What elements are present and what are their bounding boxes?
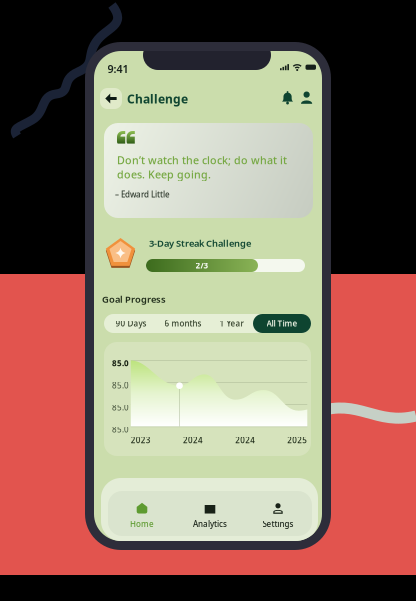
staticText: 85.0 [112,358,129,368]
staticText: 85.0 [112,402,129,413]
staticText: Home [130,518,154,529]
staticText: 2023 [131,435,151,445]
staticText: Settings [262,518,293,529]
button[interactable]: Profile [301,91,312,105]
button[interactable]: Settings [244,491,312,536]
staticText: All Time [266,318,297,329]
staticText: 2024 [183,435,203,445]
staticText: 3-Day Streak Challenge [149,237,251,249]
staticText: 90 Days [115,318,146,329]
staticText: 85.0 [112,380,129,391]
staticText: Don’t watch the clock; do what it does. … [117,153,287,181]
staticText: 2025 [287,435,307,445]
staticText: 2024 [235,435,255,445]
button[interactable]: Back [100,88,122,109]
button[interactable]: All Time [253,314,311,333]
staticText: 1 Year [219,318,243,329]
button[interactable]: 90 Days [105,314,157,333]
button[interactable]: 1 Year [209,314,254,333]
button[interactable]: Analytics [176,491,244,536]
button[interactable]: 6 months [157,314,209,333]
button[interactable]: Home [108,491,176,536]
staticText: 6 months [164,318,201,329]
staticText: Goal Progress [102,293,166,305]
staticText: – Edward Little [115,189,170,200]
staticText: 9:41 [108,62,129,76]
staticText: Challenge [127,91,188,107]
button[interactable]: Notifications [282,91,293,105]
staticText: 85.0 [112,424,129,435]
staticText: 2/3 [195,260,208,271]
staticText: Analytics [193,518,227,529]
